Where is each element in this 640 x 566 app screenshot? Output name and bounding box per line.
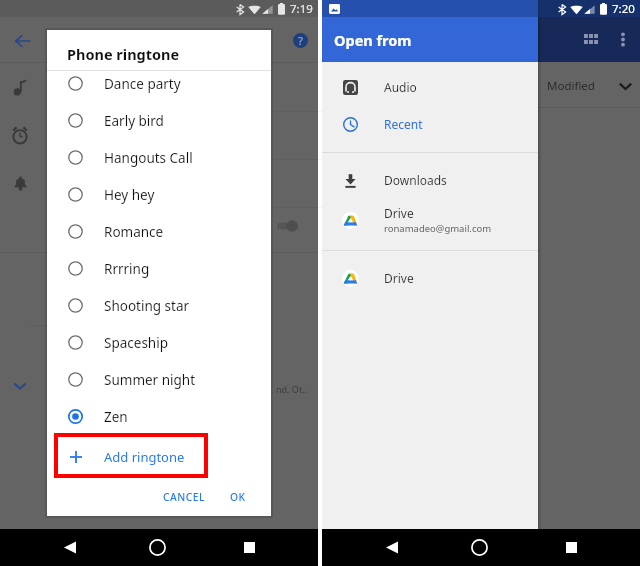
- staticText: nd, Ot..: [276, 383, 307, 395]
- button[interactable]: OK: [222, 482, 254, 512]
- staticText: Phone ringtone: [67, 44, 180, 64]
- staticText: Drive: [384, 270, 414, 286]
- staticText: Dance party: [104, 75, 181, 93]
- staticText: 7:20: [612, 1, 635, 17]
- staticText: 7:19: [290, 1, 313, 17]
- button[interactable]: Drive: [322, 201, 538, 239]
- staticText: Summer night: [104, 371, 196, 389]
- staticText: Audio: [384, 79, 417, 95]
- staticText: ronamadeo@gmail.com: [384, 222, 492, 235]
- button[interactable]: Grid view: [577, 25, 605, 53]
- button[interactable]: Modified: [544, 70, 635, 102]
- button[interactable]: Early bird: [47, 102, 271, 139]
- button[interactable]: Add ringtone: [54, 433, 208, 478]
- button[interactable]: Rrrring: [47, 250, 271, 287]
- button[interactable]: Home: [461, 529, 497, 566]
- button[interactable]: Help: [287, 27, 313, 53]
- button[interactable]: Drive: [322, 259, 538, 297]
- button[interactable]: Hey hey: [47, 176, 271, 213]
- staticText: Drive: [384, 205, 414, 221]
- button[interactable]: Back: [374, 529, 410, 566]
- button[interactable]: Home: [139, 529, 175, 566]
- staticText: Early bird: [104, 112, 164, 130]
- staticText: Recent: [384, 116, 423, 132]
- staticText: Romance: [104, 223, 164, 241]
- button[interactable]: Summer night: [47, 361, 271, 398]
- button[interactable]: Back: [52, 529, 88, 566]
- staticText: Rrrring: [104, 260, 150, 278]
- button[interactable]: Audio: [322, 68, 538, 106]
- staticText: CANCEL: [163, 490, 206, 504]
- staticText: Downloads: [384, 172, 447, 188]
- button[interactable]: Downloads: [322, 161, 538, 199]
- button[interactable]: Romance: [47, 213, 271, 250]
- staticText: Add ringtone: [104, 448, 185, 466]
- staticText: Modified: [547, 78, 595, 94]
- staticText: Open from: [334, 30, 412, 50]
- button[interactable]: Spaceship: [47, 324, 271, 361]
- staticText: Shooting star: [104, 297, 190, 315]
- button[interactable]: CANCEL: [155, 482, 214, 512]
- button[interactable]: Hangouts Call: [47, 139, 271, 176]
- button[interactable]: Shooting star: [47, 287, 271, 324]
- staticText: OK: [230, 490, 246, 504]
- button[interactable]: Back: [9, 27, 36, 54]
- button[interactable]: Recents: [231, 529, 267, 566]
- staticText: ?: [298, 33, 303, 48]
- staticText: Zen: [104, 408, 128, 426]
- button[interactable]: Dance party: [47, 65, 271, 102]
- staticText: Spaceship: [104, 334, 168, 352]
- staticText: Hey hey: [104, 186, 155, 204]
- button[interactable]: Zen: [47, 398, 271, 435]
- button[interactable]: Recents: [553, 529, 589, 566]
- button[interactable]: More options: [609, 25, 637, 53]
- staticText: Hangouts Call: [104, 149, 193, 167]
- button[interactable]: Recent: [322, 105, 538, 143]
